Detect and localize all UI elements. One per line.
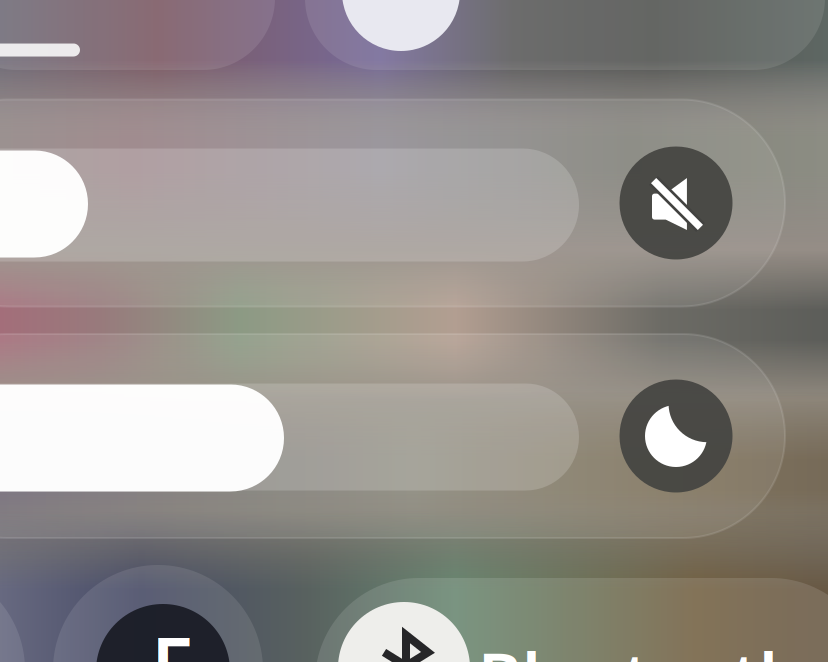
staticText: F bbox=[151, 613, 193, 662]
staticText: Bluetooth bbox=[478, 632, 802, 662]
